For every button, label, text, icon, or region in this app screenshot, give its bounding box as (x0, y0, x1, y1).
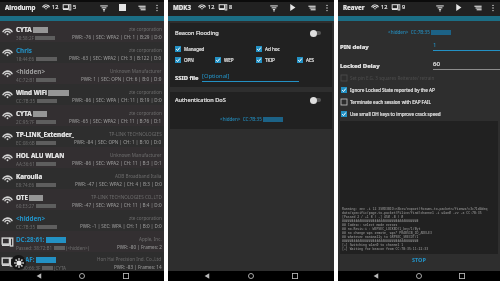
staticText: Hon Hai Precision Ind. Co.,Ltd (97, 256, 162, 262)
button[interactable]: Sort (135, 1, 148, 14)
staticText: EC:08:6B (16, 140, 35, 146)
button[interactable]: Filter (433, 1, 446, 14)
button[interactable]: Chris (0, 42, 164, 63)
staticText: PWR: 1 | SEC: OPN | CH: 6 | B:0 | D:0 (81, 76, 162, 82)
button[interactable]: TKIP (256, 57, 275, 63)
staticText: data/specific/page-to-packet/Pilive/find… (342, 211, 496, 215)
staticText: [+] Waiting for beacon from CC:7B:35:11:… (342, 247, 496, 251)
button[interactable]: Stop (116, 1, 129, 14)
button[interactable]: CYTA (0, 105, 164, 126)
staticText: Terminate each session with EAP FAIL (350, 99, 431, 105)
staticText: CYTA (16, 109, 32, 118)
button[interactable]: Start (286, 1, 299, 14)
staticText: <hidden> CC:7B:35 (388, 29, 431, 35)
staticText: Ignore Locked State reported by the AP (350, 87, 435, 93)
button[interactable]: WEP (215, 57, 234, 63)
button[interactable]: Home (77, 271, 87, 281)
staticText: CC:7B:35 (16, 224, 36, 230)
button[interactable]: Home (246, 271, 256, 281)
button[interactable]: Sort (471, 1, 484, 14)
button[interactable]: More options (151, 2, 162, 13)
staticText: AA:36:61 (16, 161, 35, 167)
staticText: ######################################## (342, 219, 496, 223)
staticText: Use small DH keys to improve crack speed (350, 111, 441, 117)
staticText: CYTA (16, 25, 32, 34)
button[interactable]: Ignore Locked State reported by the AP (341, 87, 435, 93)
button[interactable]: Toggle (310, 96, 321, 104)
button[interactable]: CYTA (0, 21, 164, 42)
button[interactable]: Ad hoc (256, 46, 280, 52)
staticText: PWR: -1 | SEC: WPA | CH: 1 | B:0 | D:0 (80, 223, 162, 229)
staticText: 8 (229, 3, 233, 11)
staticText: CC:7B:35 (16, 98, 36, 104)
button[interactable]: STOP (401, 254, 437, 265)
button[interactable]: Wind WiFi (0, 84, 164, 105)
staticText: Running: rev -i 12 3SRD3BIO:nSkrs/export… (342, 207, 496, 211)
staticText: DC:28:61: (16, 235, 45, 244)
button[interactable]: <hidden> (0, 63, 164, 84)
staticText: ######################################## (342, 239, 496, 243)
staticText: <hidden> (16, 67, 45, 76)
button[interactable]: Filter (97, 1, 110, 14)
button[interactable]: Capture (11, 255, 26, 270)
staticText: Ad hoc (265, 46, 280, 52)
staticText: Set pin E.G. 3 squares Reiterate/ retrai… (350, 75, 435, 81)
staticText: 60 (433, 60, 440, 68)
staticText: MDK3 (173, 3, 192, 11)
button[interactable]: Home (414, 271, 424, 281)
staticText: PWR: -76 | SEC: WPA2 | CH: 1 | B:29 | D:… (72, 34, 162, 40)
staticText: Karoulla (16, 172, 43, 181)
staticText: PWR: -47 | SEC: WPA2 | CH: 4 | B:3 | D:0 (75, 181, 162, 187)
staticText: 60:E3:27 (16, 203, 35, 209)
button[interactable]: Recents (457, 271, 467, 281)
button[interactable]: Managed (175, 46, 205, 52)
button[interactable]: TP-LINK_Extender_ (0, 126, 164, 147)
staticText: Reaver (343, 3, 365, 11)
staticText: PIN delay (340, 43, 369, 51)
button[interactable]: Back (371, 271, 381, 281)
staticText: TP-LINK TECHNOLOGIES (109, 131, 162, 137)
button[interactable]: Filter (267, 1, 280, 14)
staticText: TKIP (265, 57, 275, 63)
staticText: Airodump (5, 3, 36, 11)
staticText: zte corporation (129, 26, 162, 32)
staticText: Passed: 38:72:B1 (16, 245, 53, 251)
button[interactable]: Back (202, 271, 212, 281)
staticText: PWR: -80 | Frames: 2 (117, 244, 162, 250)
staticText: OTE (16, 193, 28, 202)
button[interactable]: AES (297, 57, 315, 63)
staticText: Unknown Manufacturer (110, 152, 162, 158)
staticText: zte corporation (129, 47, 162, 53)
staticText: [Passed 2 / +1 8 / -] 450 -B / 0 (342, 215, 496, 219)
button[interactable]: <hidden> (0, 210, 164, 231)
staticText: a8:30:66:3F (16, 265, 41, 271)
button[interactable]: Recents (290, 271, 300, 281)
staticText: PWR: -83 | Frames: 14 (114, 264, 162, 270)
staticText: Locked Delay (340, 62, 380, 70)
staticText: 18:44:E6 (16, 56, 35, 62)
button[interactable]: OPN (175, 57, 194, 63)
button[interactable]: OTE (0, 189, 164, 210)
staticText: PWR: -63 | SEC: WPA2 | CH: 3 | B:122 | D… (69, 55, 162, 61)
button[interactable]: Use small DH keys to improve crack speed (341, 111, 441, 117)
button[interactable]: Set pin E.G. 3 squares Reiterate/ retrai… (341, 75, 435, 81)
button[interactable]: More options (487, 2, 498, 13)
button[interactable]: DC:28:61: (0, 231, 164, 252)
button[interactable]: Karoulla (0, 168, 164, 189)
staticText: zte corporation (129, 215, 162, 221)
staticText: 19:AF: (16, 255, 35, 264)
button[interactable]: More options (321, 2, 332, 13)
staticText: Wind WiFi (16, 88, 47, 97)
button[interactable]: 19:AF: (0, 252, 164, 271)
button[interactable]: Toggle (310, 29, 321, 37)
staticText: 5 (73, 3, 77, 11)
button[interactable]: Back (34, 271, 44, 281)
button[interactable]: HOL ALU WLAN (0, 147, 164, 168)
button[interactable]: Recents (121, 271, 131, 281)
button[interactable]: Terminate each session with EAP FAIL (341, 99, 431, 105)
button[interactable]: Start (452, 1, 465, 14)
staticText: OPN (184, 57, 194, 63)
staticText: AES (306, 57, 315, 63)
button[interactable]: Sort (305, 1, 318, 14)
staticText: 38:58:2F (16, 35, 34, 41)
